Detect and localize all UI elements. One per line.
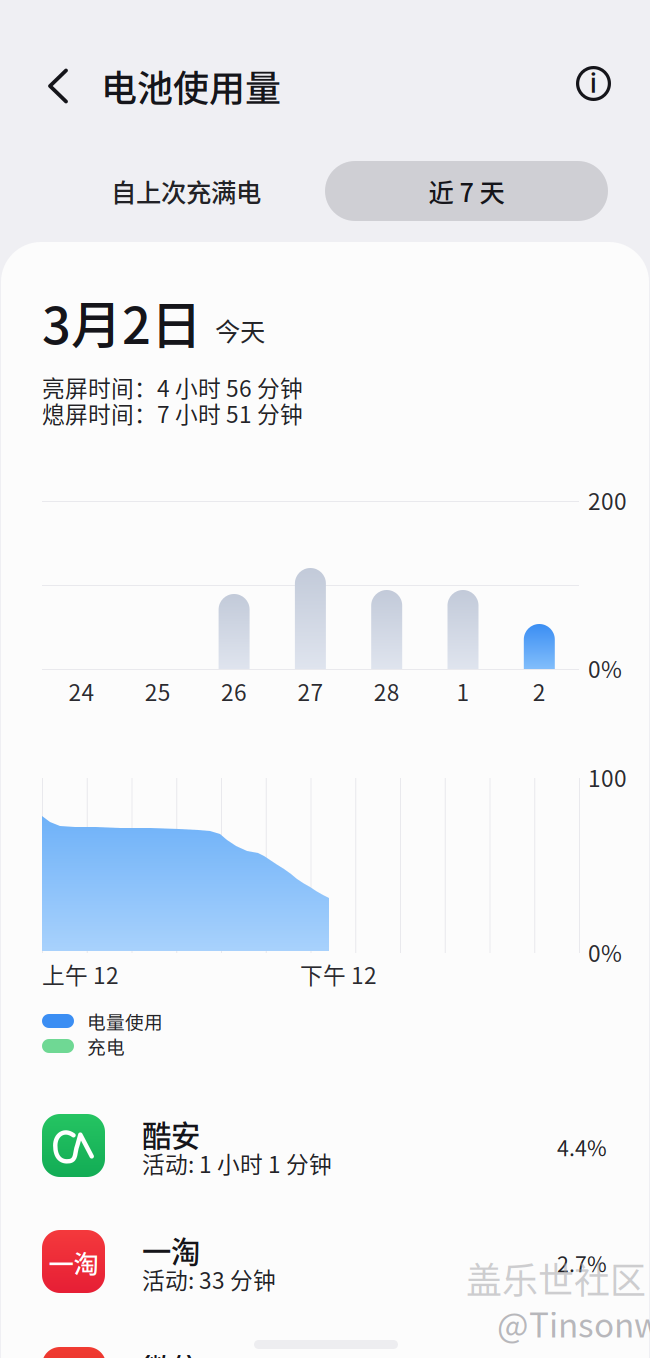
staticText: 25 [145, 675, 171, 707]
staticText: 2 [533, 675, 546, 707]
staticText: 一淘 [142, 1229, 200, 1271]
staticText: 近 7 天 [428, 173, 504, 209]
staticText: 酷安 [142, 1113, 200, 1155]
button[interactable]: 返回 [30, 58, 86, 114]
button[interactable]: 一淘 [0, 1212, 650, 1316]
staticText: 24 [68, 675, 94, 707]
staticText: 上午 12 [42, 958, 119, 990]
staticText: 充电 [87, 1032, 125, 1059]
staticText: 自上次充满电 [111, 173, 261, 209]
button[interactable]: 近 7 天 [325, 161, 608, 221]
staticText: 活动: 33 分钟 [142, 1263, 276, 1295]
staticText: 活动: 1 小时 1 分钟 [142, 1147, 332, 1179]
staticText: @Tinsonw [497, 1299, 650, 1347]
staticText: 电池使用量 [101, 60, 281, 112]
staticText: 0% [588, 652, 622, 684]
button[interactable]: 酷安 [0, 1096, 650, 1200]
staticText: 4.4% [557, 1132, 607, 1162]
staticText: 26 [221, 675, 247, 707]
staticText: 2.7% [557, 1248, 607, 1278]
staticText: 亮屏时间：4 小时 56 分钟 [42, 371, 303, 403]
staticText: 微信 [142, 1346, 200, 1358]
staticText: 3月2日 [42, 285, 202, 359]
staticText: 28 [374, 675, 400, 707]
button[interactable]: 信息 [576, 66, 611, 101]
staticText: 一淘 [48, 1244, 98, 1281]
staticText: 100 [588, 761, 627, 793]
staticText: i [590, 66, 597, 99]
staticText: 下午 12 [300, 958, 377, 990]
staticText: 今天 [215, 312, 265, 348]
staticText: 熄屏时间：7 小时 51 分钟 [42, 397, 303, 429]
staticText: 200 [588, 484, 627, 516]
staticText: 盖乐世社区 [466, 1252, 646, 1304]
button[interactable]: 自上次充满电 [76, 160, 296, 222]
staticText: 0% [588, 936, 622, 968]
staticText: 电量使用 [87, 1007, 163, 1034]
staticText: 27 [297, 675, 323, 707]
staticText: 1 [456, 675, 469, 707]
button[interactable]: 微信 [0, 1347, 650, 1358]
